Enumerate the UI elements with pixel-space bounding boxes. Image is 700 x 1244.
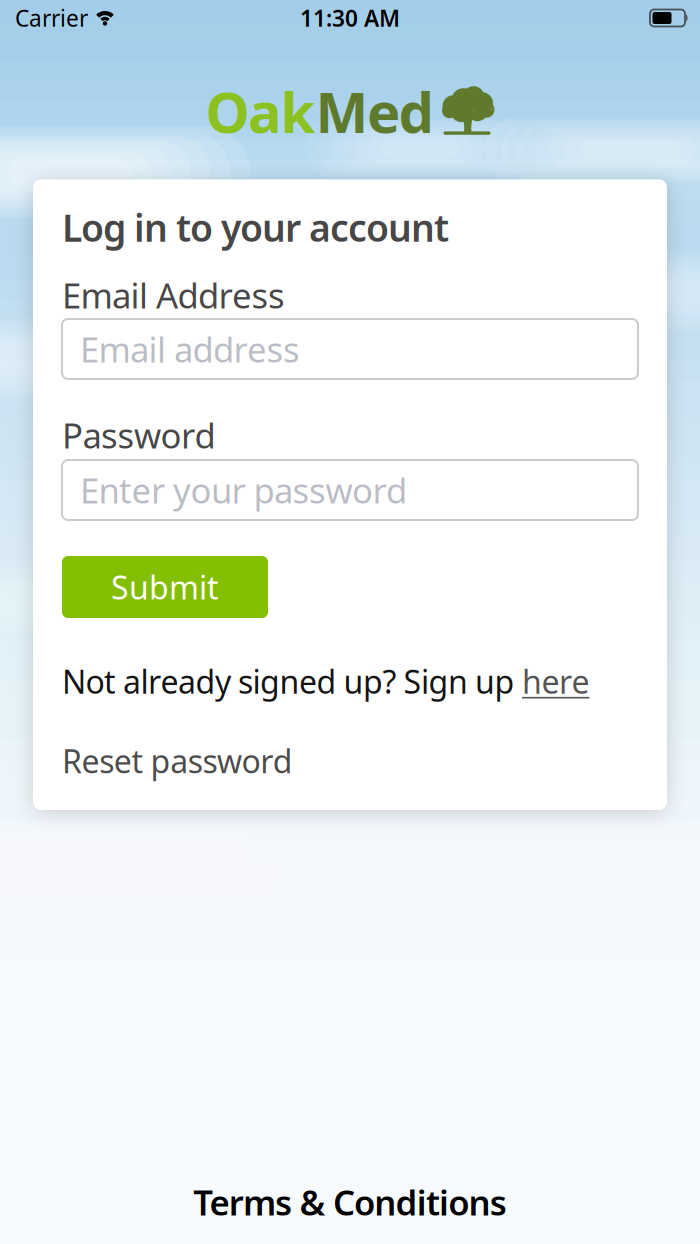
staticText: Reset password (62, 739, 293, 782)
staticText: 11:30 AM (300, 3, 400, 33)
staticText: Password (62, 412, 215, 458)
staticText: Email Address (62, 272, 285, 318)
button[interactable]: Terms & Conditions (193, 1179, 507, 1225)
button[interactable]: Reset password (62, 739, 293, 782)
staticText: Not already signed up? Sign up (62, 660, 522, 702)
staticText: Terms & Conditions (193, 1179, 507, 1225)
staticText: Enter your password (80, 467, 407, 513)
staticText: Submit (111, 566, 219, 608)
button[interactable]: here (522, 660, 589, 702)
staticText: Oak (205, 74, 315, 148)
staticText: here (522, 660, 589, 702)
staticText: Log in to your account (62, 202, 449, 252)
staticText: Carrier (15, 3, 88, 33)
staticText: Email address (80, 326, 300, 372)
staticText: Med (315, 74, 433, 148)
button[interactable]: Submit (62, 556, 268, 618)
button[interactable]: Email address (62, 319, 638, 379)
button[interactable]: Enter your password (62, 460, 638, 520)
